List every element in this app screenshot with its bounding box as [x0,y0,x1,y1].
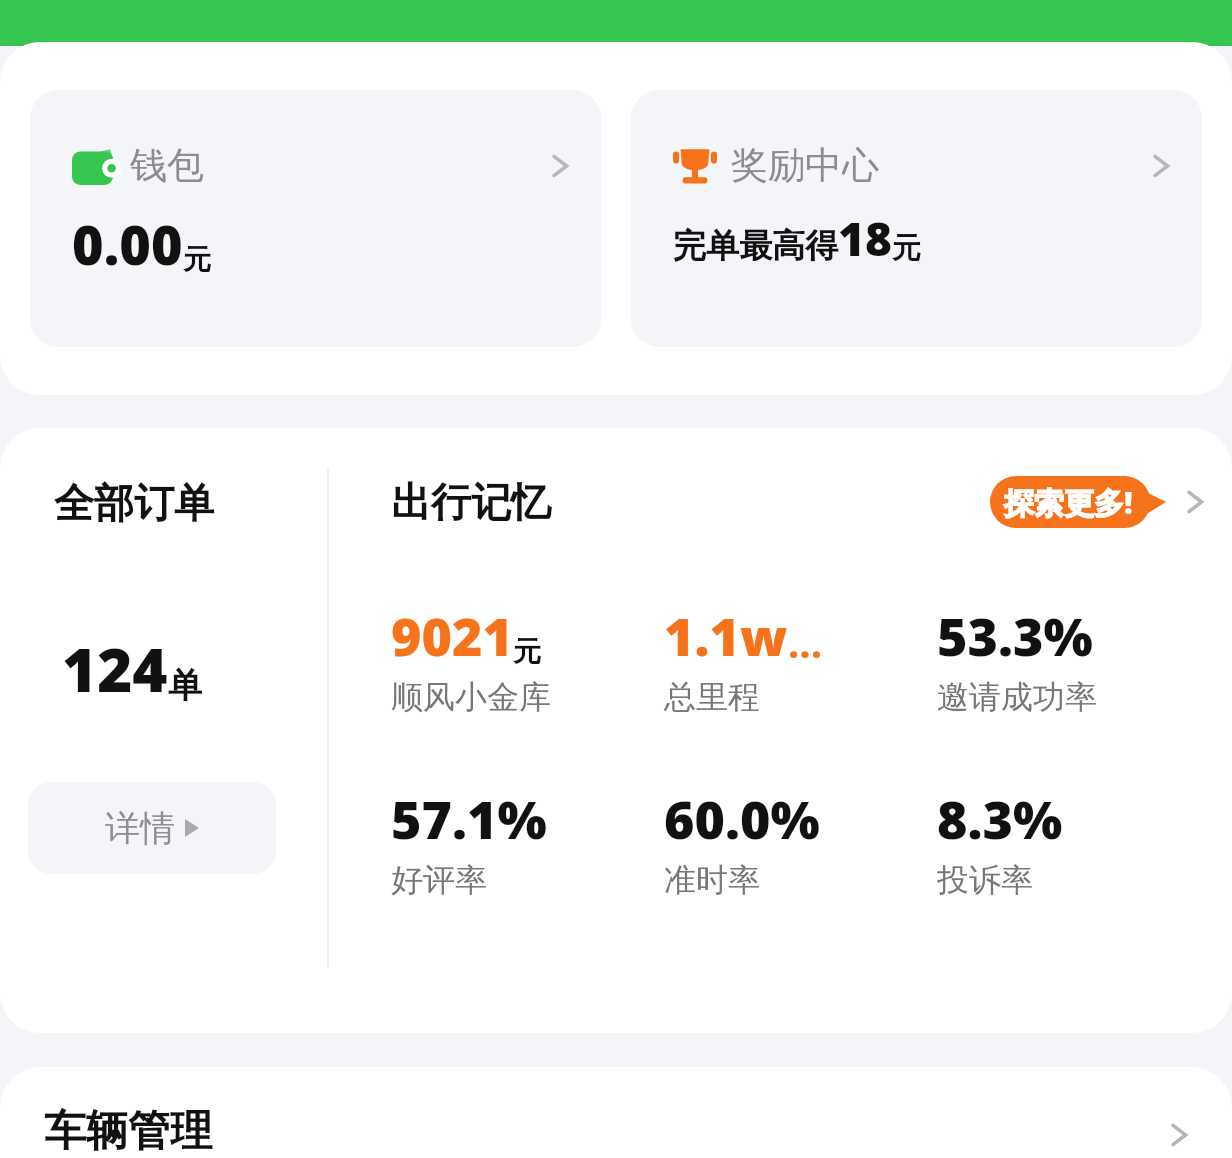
staticText: 53.3% [937,600,1093,671]
button[interactable]: 57.1% [391,783,664,900]
staticText: … [788,615,823,669]
button[interactable]: 8.3% [937,783,1210,900]
staticText: 全部订单 [54,478,214,528]
button[interactable]: 车辆管理 [0,1067,1232,1158]
staticText: 邀请成功率 [937,677,1097,717]
button[interactable]: 奖励中心 [631,90,1202,347]
staticText: 8.3% [937,783,1063,854]
staticText: 57.1% [391,783,547,854]
button[interactable]: 详情 [28,782,276,874]
staticText: 0.00 [72,207,183,281]
staticText: 总里程 [664,677,760,717]
button[interactable]: 探索更多! [990,476,1166,528]
staticText: 元 [513,634,541,669]
staticText: 准时率 [664,860,760,900]
button[interactable]: 全部订单 [0,428,327,1033]
staticText: 车辆管理 [44,1105,212,1158]
staticText: 9021 [391,600,513,671]
staticText: 完单最高得 [673,225,838,267]
staticText: 124 [62,628,168,710]
staticText: 探索更多! [1004,482,1133,523]
button[interactable]: 探索更多! [990,476,1210,528]
staticText: 1.1w [664,600,788,671]
button[interactable]: 53.3% [937,600,1210,717]
button[interactable]: 60.0% [664,783,937,900]
button[interactable]: 钱包 [30,90,601,347]
staticText: 奖励中心 [731,142,879,189]
staticText: 60.0% [664,783,820,854]
staticText: 出行记忆 [391,477,551,527]
staticText: 单 [168,664,202,707]
staticText: 投诉率 [937,860,1033,900]
button[interactable]: 1.1w [664,600,937,717]
staticText: 钱包 [130,142,204,189]
staticText: 元 [183,242,211,277]
staticText: 元 [892,230,921,267]
staticText: 好评率 [391,860,487,900]
button[interactable]: 9021 [391,600,664,717]
staticText: 详情 [105,806,175,850]
staticText: 18 [838,207,892,270]
staticText: 顺风小金库 [391,677,551,717]
